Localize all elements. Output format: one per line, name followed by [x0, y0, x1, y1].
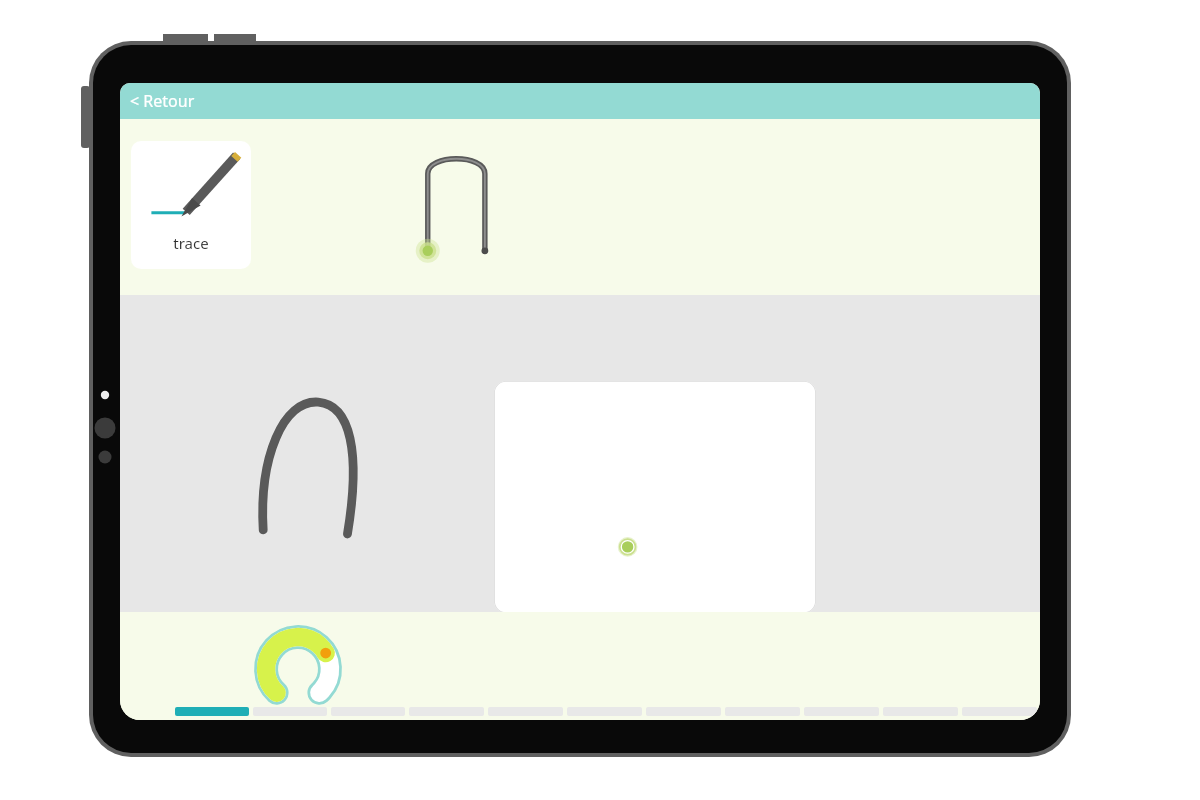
button[interactable]: Drawing area [494, 381, 816, 613]
button[interactable] [962, 707, 1037, 716]
staticText: trace [173, 233, 209, 253]
staticText: < Retour [130, 90, 195, 112]
button[interactable]: trace [131, 141, 251, 269]
button[interactable]: < Retour [120, 83, 1040, 119]
button[interactable] [175, 707, 249, 716]
